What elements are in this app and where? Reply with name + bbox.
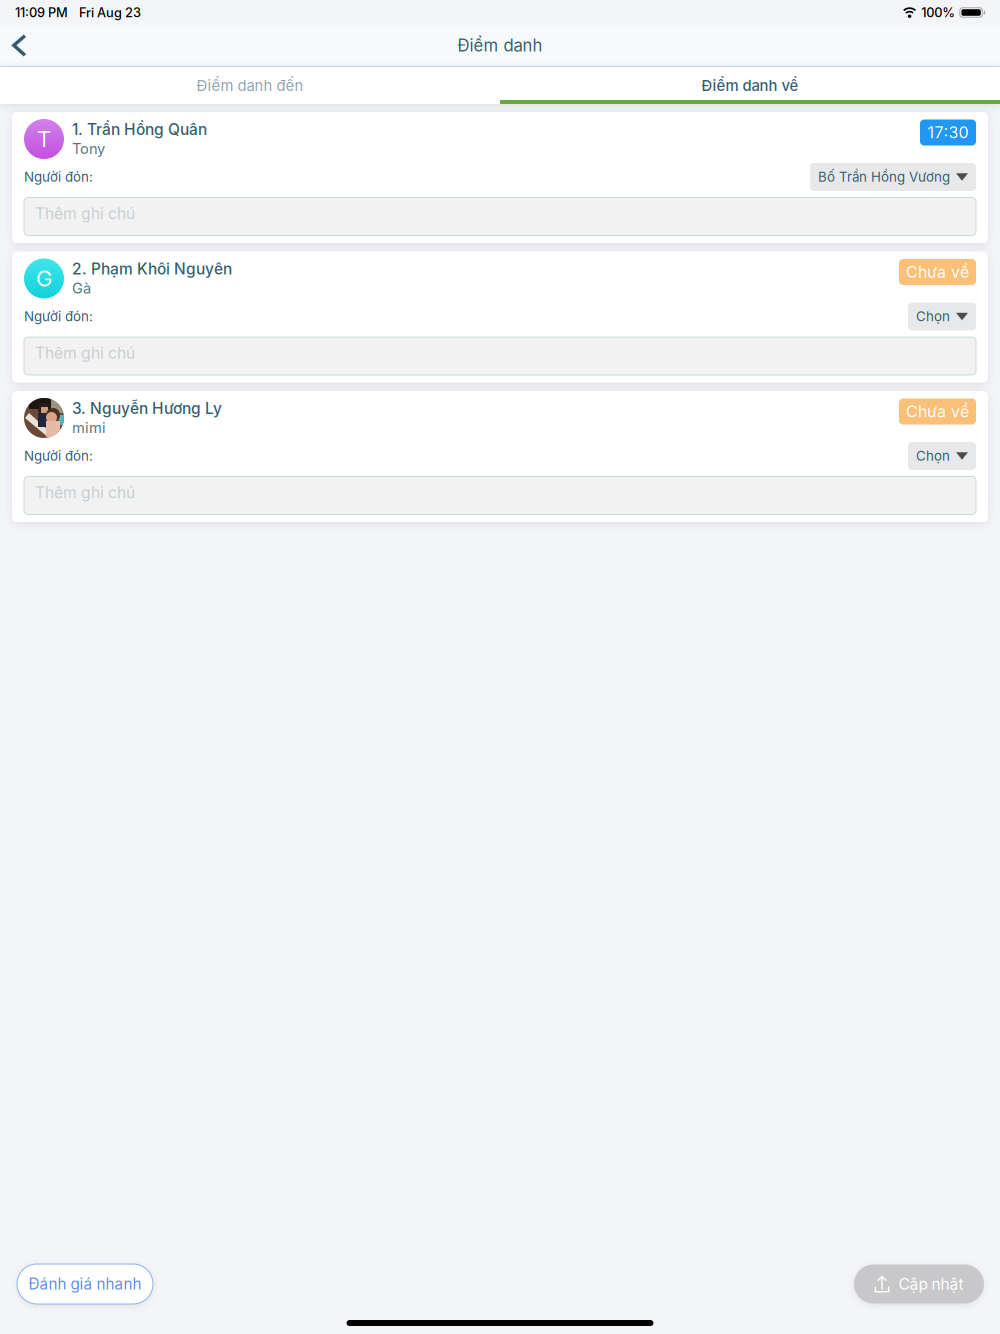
staticText: Thêm ghi chú xyxy=(35,344,135,362)
button[interactable]: Bố Trần Hồng Vương xyxy=(810,163,976,191)
staticText: Thêm ghi chú xyxy=(35,483,135,502)
staticText: Chọn xyxy=(916,308,950,324)
button[interactable]: Thêm ghi chú xyxy=(24,476,976,514)
staticText: Gà xyxy=(72,279,91,297)
staticText: 2. Phạm Khôi Nguyên xyxy=(72,259,232,278)
button[interactable]: Back xyxy=(0,25,39,66)
staticText: 1. Trần Hồng Quân xyxy=(72,120,207,139)
staticText: Chọn xyxy=(916,448,950,464)
staticText: Tony xyxy=(72,140,105,157)
button[interactable]: Thêm ghi chú xyxy=(24,337,976,375)
staticText: Chưa về xyxy=(906,402,969,421)
staticText: 11:09 PM xyxy=(15,5,68,20)
staticText: Điểm danh về xyxy=(701,76,798,94)
button[interactable]: Chưa về xyxy=(899,398,976,424)
staticText: 17:30 xyxy=(927,123,968,142)
staticText: Fri Aug 23 xyxy=(79,5,141,20)
button[interactable]: 17:30 xyxy=(920,119,976,145)
staticText: Cập nhật xyxy=(898,1275,963,1293)
button[interactable]: Chọn xyxy=(908,302,976,330)
staticText: Thêm ghi chú xyxy=(35,204,135,223)
button[interactable]: Điểm danh đến xyxy=(0,67,500,104)
staticText: G xyxy=(36,265,52,292)
staticText: Bố Trần Hồng Vương xyxy=(818,169,950,185)
button[interactable]: Chọn xyxy=(908,442,976,470)
button[interactable]: Thêm ghi chú xyxy=(24,197,976,235)
staticText: Người đón: xyxy=(24,448,93,464)
staticText: mimi xyxy=(72,419,106,436)
staticText: T xyxy=(37,126,51,152)
staticText: 100% xyxy=(921,5,955,20)
button[interactable]: Cập nhật xyxy=(854,1264,984,1303)
staticText: Người đón: xyxy=(24,169,93,185)
staticText: 3. Nguyễn Hương Ly xyxy=(72,399,222,418)
staticText: Người đón: xyxy=(24,308,93,324)
button[interactable]: Chưa về xyxy=(899,259,976,285)
staticText: Điểm danh xyxy=(457,35,542,56)
staticText: Điểm danh đến xyxy=(196,76,303,94)
staticText: Chưa về xyxy=(906,262,969,282)
button[interactable]: Điểm danh về xyxy=(500,67,1000,104)
staticText: Đánh giá nhanh xyxy=(28,1275,141,1293)
button[interactable]: Đánh giá nhanh xyxy=(17,1264,153,1304)
